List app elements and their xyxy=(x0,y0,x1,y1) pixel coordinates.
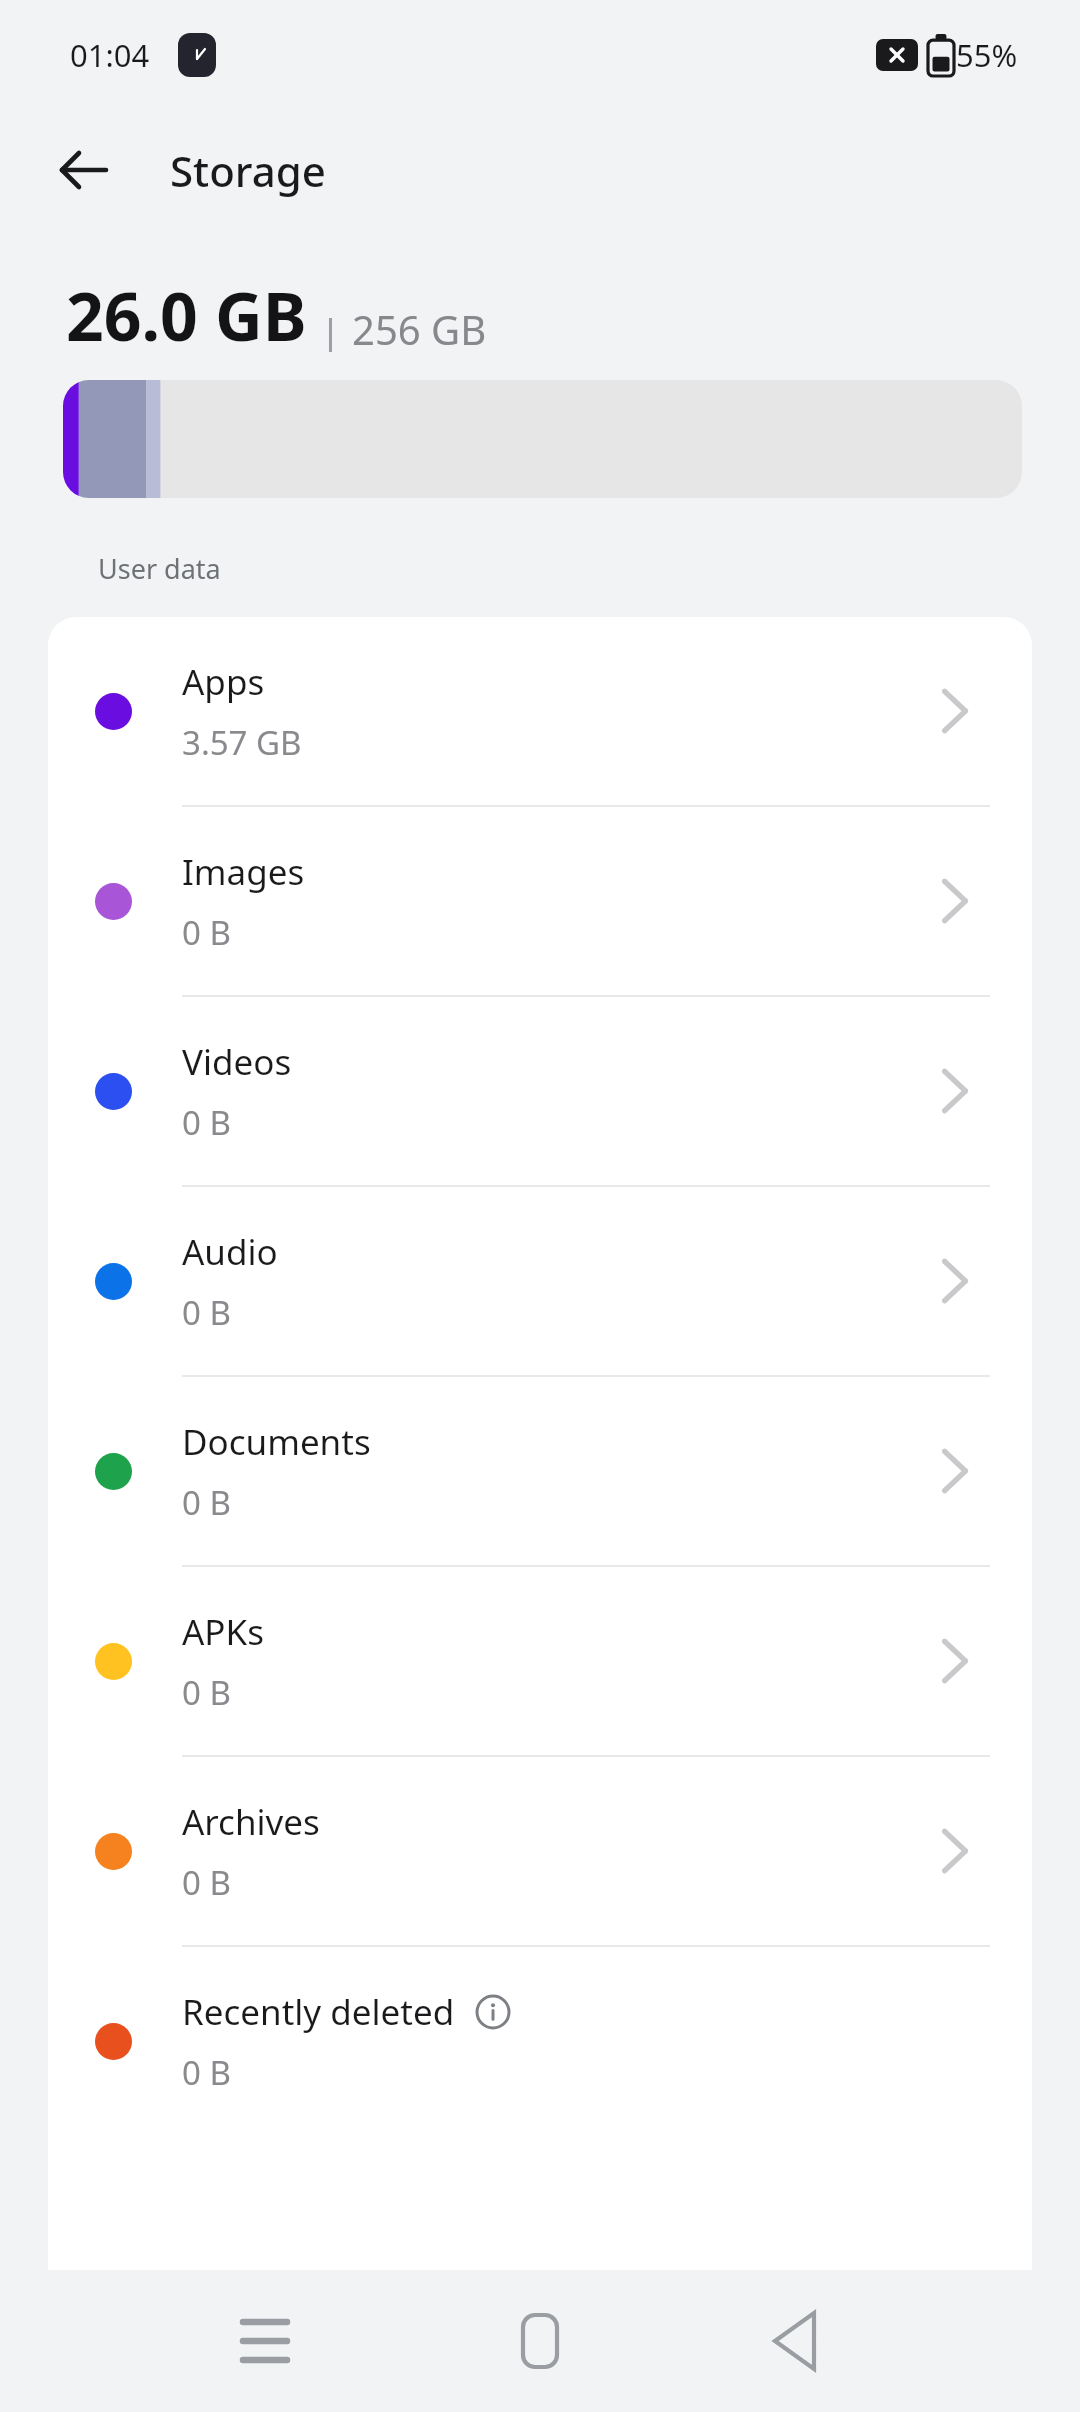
staticText: User data xyxy=(98,550,221,587)
button[interactable]: Images xyxy=(48,807,1032,995)
staticText: Archives xyxy=(182,1798,320,1846)
button[interactable]: Recents xyxy=(205,2281,325,2401)
staticText: 01:04 xyxy=(70,34,150,76)
button[interactable]: APKs xyxy=(48,1567,1032,1755)
button[interactable]: Back xyxy=(40,126,128,214)
staticText: Apps xyxy=(182,658,265,706)
staticText: 0 B xyxy=(182,1290,231,1335)
staticText: 55% xyxy=(956,34,1018,76)
staticText: 0 B xyxy=(182,2050,231,2095)
button[interactable]: Info xyxy=(473,1992,513,2032)
staticText: 0 B xyxy=(182,1670,231,1715)
button[interactable]: Documents xyxy=(48,1377,1032,1565)
staticText: 0 B xyxy=(182,1860,231,1905)
button[interactable]: Recently deleted xyxy=(48,1947,1032,2135)
staticText: Images xyxy=(182,848,305,896)
staticText: Audio xyxy=(182,1228,278,1276)
staticText: 3.57 GB xyxy=(182,720,302,765)
staticText: 0 B xyxy=(182,1480,231,1525)
button[interactable]: Back xyxy=(737,2281,857,2401)
staticText: Recently deleted xyxy=(182,1988,455,2036)
staticText: Storage xyxy=(170,142,326,199)
button[interactable]: Archives xyxy=(48,1757,1032,1945)
staticText: 256 GB xyxy=(352,302,487,356)
staticText: Documents xyxy=(182,1418,371,1466)
button[interactable]: Audio xyxy=(48,1187,1032,1375)
staticText: 0 B xyxy=(182,1100,231,1145)
button[interactable]: Videos xyxy=(48,997,1032,1185)
button[interactable]: Apps xyxy=(48,617,1032,805)
staticText: APKs xyxy=(182,1608,264,1656)
staticText: Videos xyxy=(182,1038,292,1086)
staticText: 26.0 GB xyxy=(66,270,307,360)
button[interactable]: Home xyxy=(480,2281,600,2401)
staticText: 0 B xyxy=(182,910,231,955)
